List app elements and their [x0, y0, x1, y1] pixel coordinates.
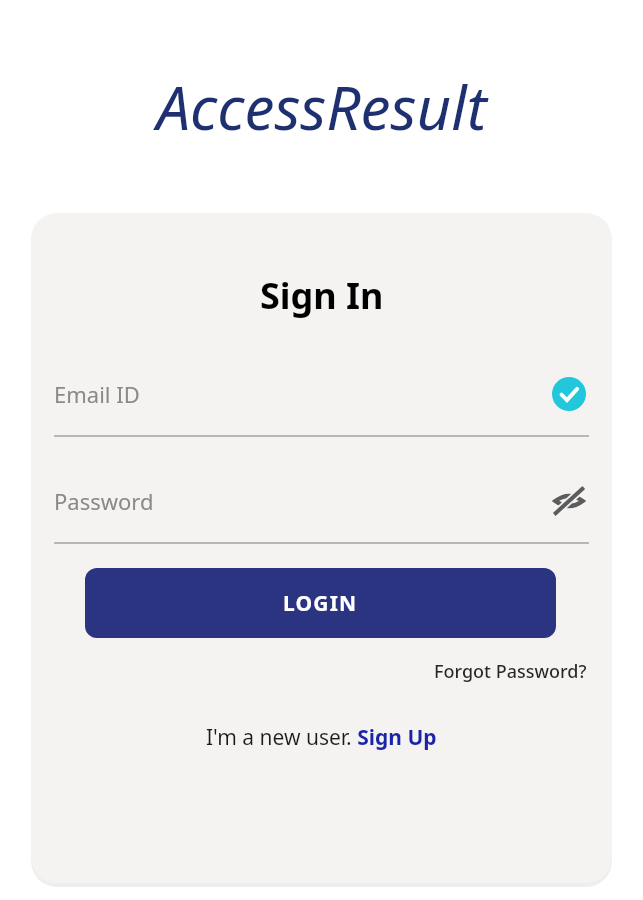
staticText: I'm a new user. Sign Up — [206, 723, 437, 752]
staticText: Sign In — [260, 271, 384, 320]
staticText: Email ID — [54, 379, 140, 409]
staticText: Password — [54, 486, 154, 516]
button[interactable]: Email verified — [549, 374, 589, 414]
staticText: AccessResult — [156, 66, 487, 148]
button[interactable]: Password — [54, 479, 589, 544]
button[interactable]: Forgot Password? — [432, 655, 589, 688]
button[interactable]: Email ID — [54, 372, 589, 437]
staticText: Forgot Password? — [434, 659, 587, 684]
button[interactable]: Show password — [549, 481, 589, 521]
button[interactable]: LOGIN — [85, 568, 556, 638]
button[interactable]: I'm a new user. Sign Up — [202, 720, 441, 755]
staticText: LOGIN — [283, 589, 358, 618]
